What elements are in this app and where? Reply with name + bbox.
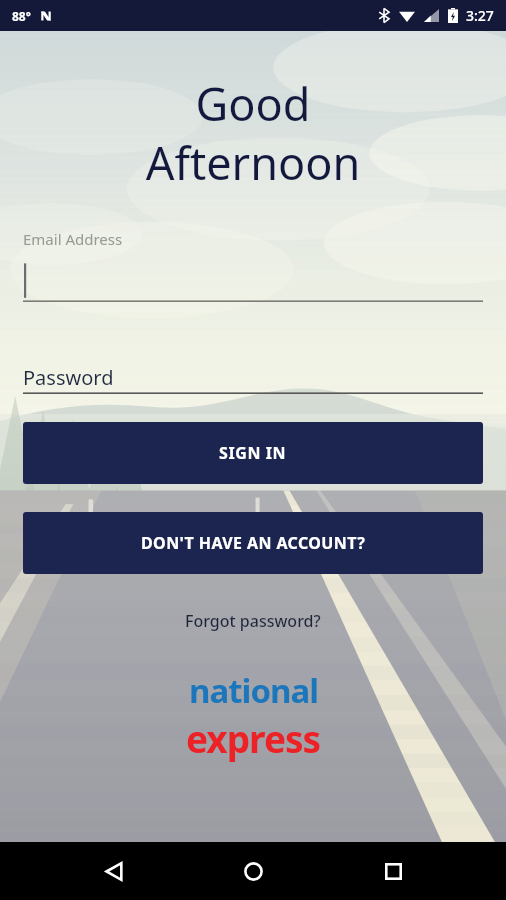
staticText: SIGN IN (219, 442, 287, 464)
staticText: Forgot password? (185, 610, 321, 632)
staticText: DON'T HAVE AN ACCOUNT? (141, 532, 366, 554)
staticText: national (189, 668, 319, 713)
button[interactable]: Home (227, 845, 279, 897)
staticText: 88° (12, 8, 31, 24)
staticText: express (186, 713, 321, 763)
button[interactable] (23, 260, 483, 302)
staticText: Email Address (23, 229, 123, 249)
button[interactable]: Forgot password? (173, 604, 333, 638)
button[interactable]: Back (88, 845, 140, 897)
staticText: 3:27 (466, 6, 494, 25)
staticText: Password (23, 364, 114, 391)
button[interactable]: DON'T HAVE AN ACCOUNT? (23, 512, 483, 574)
button[interactable]: SIGN IN (23, 422, 483, 484)
staticText: Good Afternoon (0, 73, 506, 193)
button[interactable]: Recent apps (367, 845, 419, 897)
button[interactable]: Password (23, 360, 483, 394)
